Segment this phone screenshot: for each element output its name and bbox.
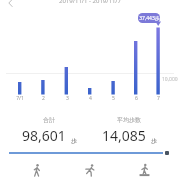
staticText: 37,443歩 — [139, 15, 160, 22]
staticText: 平均歩数 — [117, 116, 141, 124]
staticText: 3 — [66, 95, 69, 102]
staticText: 5 — [112, 95, 115, 102]
button[interactable]: Walk — [24, 158, 48, 180]
button[interactable]: Back — [3, 0, 19, 11]
staticText: 歩 — [151, 137, 157, 145]
staticText: 2 — [42, 95, 45, 102]
button[interactable]: Run — [77, 158, 101, 180]
staticText: 合計 — [43, 116, 55, 124]
staticText: 歩 — [71, 137, 77, 145]
staticText: 2019/11/1 - 2019/11/7 — [59, 0, 122, 5]
staticText: 98,601 — [22, 126, 66, 145]
staticText: 7 — [157, 95, 160, 102]
staticText: 7/1 — [16, 95, 24, 102]
staticText: 6 — [135, 95, 138, 102]
button[interactable]: Hike — [132, 158, 156, 180]
staticText: 4 — [89, 95, 92, 102]
staticText: 14,085 — [102, 126, 146, 145]
staticText: 10,000 — [162, 76, 178, 83]
